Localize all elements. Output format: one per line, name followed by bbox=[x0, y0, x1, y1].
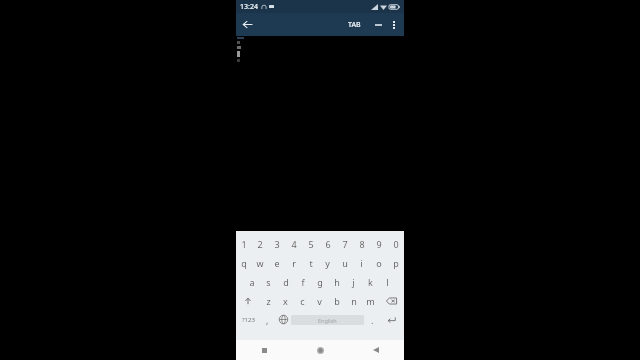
button[interactable]: Back bbox=[236, 13, 259, 36]
button[interactable]: 3 bbox=[268, 235, 285, 253]
staticText: y bbox=[325, 257, 330, 269]
button[interactable]: i bbox=[353, 253, 370, 272]
button[interactable]: c bbox=[294, 291, 311, 310]
staticText: z bbox=[266, 295, 271, 307]
button[interactable]: l bbox=[379, 272, 396, 291]
button[interactable]: e bbox=[268, 253, 285, 272]
staticText: j bbox=[352, 276, 355, 288]
staticText: TAB bbox=[348, 20, 361, 30]
button[interactable]: 8 bbox=[353, 235, 370, 253]
staticText: t bbox=[309, 257, 313, 269]
button[interactable]: m bbox=[362, 291, 379, 310]
staticText: 6 bbox=[325, 238, 331, 250]
staticText: e bbox=[274, 257, 280, 269]
button[interactable]: h bbox=[328, 272, 345, 291]
button[interactable]: g bbox=[311, 272, 328, 291]
button[interactable]: TAB bbox=[344, 13, 365, 36]
button[interactable]: n bbox=[345, 291, 362, 310]
button[interactable]: f bbox=[294, 272, 311, 291]
staticText: 0 bbox=[393, 238, 399, 250]
button[interactable]: t bbox=[302, 253, 319, 272]
staticText: b bbox=[334, 295, 340, 307]
staticText: 7 bbox=[342, 238, 348, 250]
button[interactable]: q bbox=[236, 253, 252, 272]
button[interactable]: z bbox=[260, 291, 277, 310]
staticText: 13:24 bbox=[240, 2, 258, 12]
staticText: 3 bbox=[274, 238, 280, 250]
staticText: q bbox=[241, 257, 247, 269]
staticText: n bbox=[351, 295, 357, 307]
button[interactable]: p bbox=[387, 253, 404, 272]
staticText: . bbox=[371, 314, 374, 326]
button[interactable]: Enter bbox=[380, 310, 402, 329]
staticText: d bbox=[283, 276, 289, 288]
staticText: a bbox=[249, 276, 255, 288]
staticText: x bbox=[283, 295, 288, 307]
button[interactable]: Recent apps bbox=[236, 340, 292, 360]
button[interactable]: English bbox=[291, 315, 364, 325]
button[interactable]: 0 bbox=[387, 235, 404, 253]
button[interactable]: a bbox=[244, 272, 260, 291]
button[interactable]: 1 bbox=[236, 235, 252, 253]
button[interactable]: x bbox=[277, 291, 294, 310]
button[interactable]: Shift bbox=[236, 291, 260, 310]
button[interactable]: Change keyboard language bbox=[275, 310, 291, 329]
button[interactable]: Backspace bbox=[379, 291, 404, 310]
button[interactable]: w bbox=[252, 253, 268, 272]
button[interactable]: v bbox=[311, 291, 328, 310]
button[interactable]: o bbox=[370, 253, 387, 272]
button[interactable]: , bbox=[259, 310, 275, 329]
button[interactable]: b bbox=[328, 291, 345, 310]
button[interactable]: 9 bbox=[370, 235, 387, 253]
button[interactable]: j bbox=[345, 272, 362, 291]
button[interactable]: Minimize bbox=[370, 13, 386, 36]
button[interactable]: k bbox=[362, 272, 379, 291]
staticText: v bbox=[317, 295, 322, 307]
staticText: , bbox=[266, 314, 269, 326]
staticText: ?123 bbox=[242, 316, 255, 324]
button[interactable]: 4 bbox=[285, 235, 302, 253]
button[interactable]: 6 bbox=[319, 235, 336, 253]
staticText: k bbox=[368, 276, 373, 288]
button[interactable]: Home bbox=[292, 340, 348, 360]
staticText: p bbox=[393, 257, 399, 269]
staticText: s bbox=[266, 276, 271, 288]
button[interactable]: Back bbox=[348, 340, 404, 360]
button[interactable]: y bbox=[319, 253, 336, 272]
button[interactable]: r bbox=[285, 253, 302, 272]
staticText: h bbox=[334, 276, 340, 288]
staticText: 2 bbox=[257, 238, 263, 250]
staticText: i bbox=[360, 257, 363, 269]
button[interactable]: s bbox=[260, 272, 277, 291]
staticText: w bbox=[256, 257, 264, 269]
button[interactable]: 5 bbox=[302, 235, 319, 253]
staticText: c bbox=[300, 295, 305, 307]
staticText: 4 bbox=[291, 238, 297, 250]
button[interactable]: 2 bbox=[252, 235, 268, 253]
button[interactable]: u bbox=[336, 253, 353, 272]
staticText: 9 bbox=[376, 238, 382, 250]
staticText: 1 bbox=[241, 238, 247, 250]
button[interactable]: ?123 bbox=[238, 310, 259, 329]
button[interactable]: More options bbox=[386, 13, 402, 36]
button[interactable]: d bbox=[277, 272, 294, 291]
staticText: f bbox=[301, 276, 305, 288]
button[interactable]: . bbox=[364, 310, 380, 329]
staticText: o bbox=[376, 257, 382, 269]
staticText: 8 bbox=[359, 238, 365, 250]
staticText: r bbox=[292, 257, 296, 269]
staticText: g bbox=[317, 276, 323, 288]
staticText: u bbox=[342, 257, 348, 269]
staticText: English bbox=[318, 317, 337, 324]
button[interactable]: 7 bbox=[336, 235, 353, 253]
staticText: m bbox=[366, 295, 375, 307]
staticText: l bbox=[386, 276, 389, 288]
staticText: 5 bbox=[308, 238, 314, 250]
